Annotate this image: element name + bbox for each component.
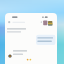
button[interactable] <box>5 13 57 64</box>
